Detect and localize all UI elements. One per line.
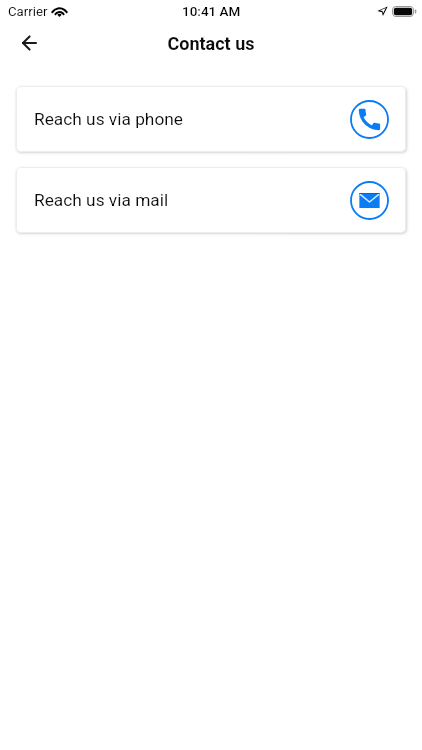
staticText: Contact us <box>167 33 255 54</box>
staticText: 10:41 AM <box>182 3 241 19</box>
staticText: Reach us via mail <box>34 190 169 210</box>
button[interactable]: Back <box>7 22 51 64</box>
button[interactable]: Reach us via phone <box>16 86 406 152</box>
staticText: Reach us via phone <box>34 109 183 129</box>
staticText: Carrier <box>8 4 48 19</box>
button[interactable]: Reach us via mail <box>16 167 406 233</box>
